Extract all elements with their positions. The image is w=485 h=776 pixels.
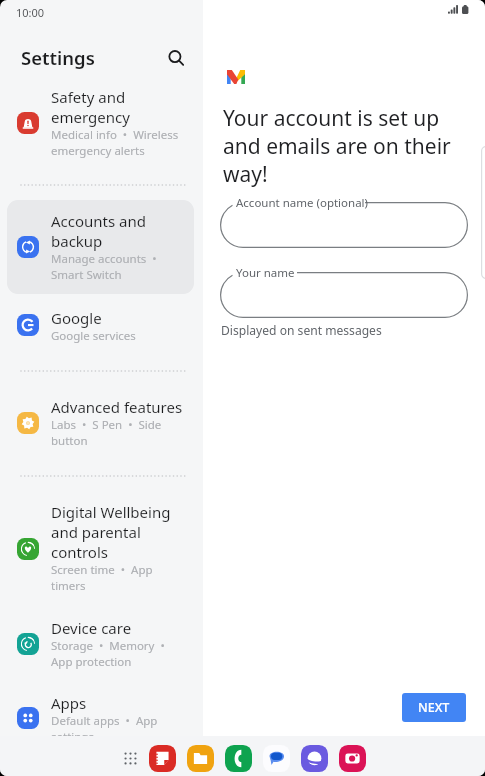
staticText: Device care: [51, 618, 132, 638]
staticText: Digital Wellbeing: [51, 502, 171, 522]
staticText: emergency: [51, 107, 130, 127]
button[interactable]: [7, 304, 194, 354]
button[interactable]: MESSAGES: [262, 744, 290, 772]
staticText: Your account is set up and emails are on…: [223, 104, 451, 188]
staticText: Advanced features: [51, 397, 183, 417]
staticText: Smart Switch: [51, 267, 122, 283]
button[interactable]: [7, 689, 194, 736]
button[interactable]: [7, 207, 194, 295]
staticText: Your name: [236, 265, 295, 281]
staticText: Default apps • App: [51, 713, 158, 729]
staticText: NEXT: [418, 699, 450, 716]
staticText: Screen time • App: [51, 562, 153, 578]
staticText: Labs • S Pen • Side: [51, 417, 162, 433]
button[interactable]: INTERNET: [300, 744, 328, 772]
staticText: 10:00: [16, 5, 45, 20]
staticText: Google services: [51, 328, 136, 344]
staticText: Storage • Memory •: [51, 638, 165, 654]
staticText: settings: [51, 729, 94, 736]
staticText: controls: [51, 542, 108, 562]
button[interactable]: FILES: [186, 744, 214, 772]
staticText: timers: [51, 578, 86, 594]
staticText: Manage accounts •: [51, 251, 157, 267]
staticText: emergency alerts: [51, 143, 145, 159]
staticText: and parental: [51, 522, 141, 542]
button[interactable]: [7, 498, 194, 607]
staticText: Medical info • Wireless: [51, 127, 179, 143]
staticText: Displayed on sent messages: [221, 322, 382, 338]
button[interactable]: [7, 393, 194, 460]
staticText: Google: [51, 308, 102, 328]
staticText: button: [51, 433, 88, 449]
staticText: App protection: [51, 654, 132, 670]
button[interactable]: All apps: [117, 745, 143, 771]
staticText: Accounts and: [51, 211, 147, 231]
staticText: Settings: [21, 45, 95, 70]
staticText: backup: [51, 231, 103, 251]
button[interactable]: [7, 83, 194, 171]
button[interactable]: Search: [163, 45, 189, 71]
staticText: Apps: [51, 693, 87, 713]
button[interactable]: KEEP: [148, 744, 176, 772]
staticText: Account name (optional): [236, 195, 369, 211]
button[interactable]: NEXT: [402, 693, 466, 722]
button[interactable]: [7, 614, 194, 681]
button[interactable]: PHONE: [224, 744, 252, 772]
staticText: Safety and: [51, 87, 126, 107]
button[interactable]: CAMERA: [338, 744, 366, 772]
